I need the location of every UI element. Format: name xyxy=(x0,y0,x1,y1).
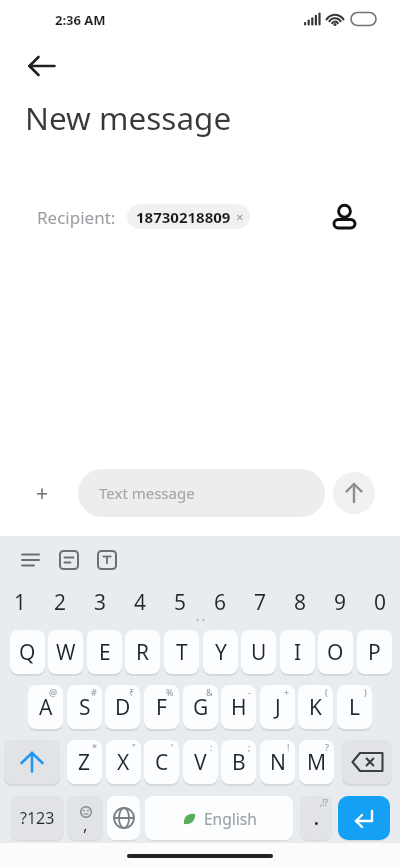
staticText: A xyxy=(39,693,53,722)
button[interactable]: X xyxy=(106,740,141,784)
button[interactable]: C xyxy=(144,740,179,784)
button[interactable]: Y xyxy=(203,630,238,674)
staticText: ( xyxy=(325,686,328,698)
button[interactable] xyxy=(4,740,60,784)
button[interactable]: J xyxy=(260,685,295,729)
staticText: U xyxy=(251,638,267,667)
staticText: O xyxy=(327,638,344,667)
staticText: ; xyxy=(248,741,251,753)
staticText: English xyxy=(204,808,257,829)
button[interactable] xyxy=(333,472,375,514)
button[interactable]: R xyxy=(125,630,160,674)
staticText: Recipient: xyxy=(37,206,116,229)
staticText: , xyxy=(83,813,88,836)
button[interactable]: ?123 xyxy=(10,796,64,840)
button[interactable]: F xyxy=(144,685,179,729)
staticText: I xyxy=(294,638,302,667)
staticText: * xyxy=(92,741,97,753)
staticText: ) xyxy=(364,686,367,698)
button[interactable]: D xyxy=(105,685,140,729)
staticText: J xyxy=(275,693,281,722)
staticText: Y xyxy=(215,638,227,667)
button[interactable]: P xyxy=(357,630,392,674)
staticText: 1 xyxy=(14,588,27,617)
staticText: D xyxy=(115,693,131,722)
button[interactable]: I xyxy=(280,630,315,674)
button[interactable]: Q xyxy=(10,630,45,674)
button[interactable]: H xyxy=(221,685,256,729)
staticText: B xyxy=(232,748,246,777)
staticText: F xyxy=(156,693,167,722)
staticText: M xyxy=(307,748,327,777)
staticText: @ xyxy=(49,686,58,698)
staticText: C xyxy=(155,748,169,777)
staticText: New message xyxy=(25,96,232,139)
staticText: Text message xyxy=(99,483,195,503)
button[interactable]: B xyxy=(221,740,256,784)
button[interactable]: 9 xyxy=(320,582,360,622)
button[interactable]: E xyxy=(87,630,122,674)
staticText: ? xyxy=(325,741,329,753)
staticText: 7 xyxy=(254,588,267,617)
button[interactable]: English xyxy=(145,796,293,840)
button[interactable] xyxy=(326,198,364,236)
staticText: 18730218809 xyxy=(136,207,231,227)
staticText: - xyxy=(248,686,251,698)
button[interactable] xyxy=(107,796,140,840)
button[interactable]: L xyxy=(337,685,372,729)
button[interactable]: K xyxy=(298,685,333,729)
button[interactable]: 6 xyxy=(200,582,240,622)
button[interactable] xyxy=(18,44,66,88)
button[interactable]: M xyxy=(299,740,334,784)
staticText: Q xyxy=(19,638,36,667)
staticText: G xyxy=(193,693,209,722)
button[interactable]: Z xyxy=(67,740,102,784)
button[interactable]: U xyxy=(241,630,276,674)
button[interactable]: , xyxy=(67,796,103,840)
staticText: S xyxy=(79,693,91,722)
button[interactable]: W xyxy=(48,630,83,674)
button[interactable]: 1 xyxy=(0,582,40,622)
button[interactable]: 5 xyxy=(160,582,200,622)
staticText: 6 xyxy=(214,588,227,617)
staticText: H xyxy=(231,693,247,722)
button[interactable]: N xyxy=(260,740,295,784)
button[interactable]: 2 xyxy=(40,582,80,622)
button[interactable]: T xyxy=(164,630,199,674)
button[interactable]: A xyxy=(28,685,63,729)
button[interactable]: 8 xyxy=(280,582,320,622)
staticText: " xyxy=(132,741,136,753)
button[interactable]: . xyxy=(300,796,332,840)
staticText: 9 xyxy=(334,588,347,617)
button[interactable]: G xyxy=(183,685,218,729)
button[interactable]: 18730218809 xyxy=(127,204,250,229)
staticText: : xyxy=(210,741,213,753)
button[interactable] xyxy=(338,796,390,840)
staticText: P xyxy=(368,638,381,667)
button[interactable]: O xyxy=(318,630,353,674)
staticText: R xyxy=(136,638,150,667)
button[interactable]: 4 xyxy=(120,582,160,622)
staticText: + xyxy=(36,479,49,508)
staticText: 5 xyxy=(174,588,187,617)
button[interactable]: 7 xyxy=(240,582,280,622)
staticText: ₹ xyxy=(129,686,135,698)
staticText: ! xyxy=(287,741,290,753)
button[interactable] xyxy=(342,740,392,784)
staticText: + xyxy=(284,686,290,698)
staticText: 2 xyxy=(54,588,67,617)
staticText: L xyxy=(349,693,361,722)
staticText: N xyxy=(270,748,286,777)
button[interactable]: S xyxy=(67,685,102,729)
button[interactable]: Text message xyxy=(78,469,325,517)
button[interactable]: 3 xyxy=(80,582,120,622)
staticText: # xyxy=(91,686,97,698)
staticText: E xyxy=(99,638,111,667)
button[interactable]: 0 xyxy=(360,582,400,622)
staticText: 2:36 AM xyxy=(55,11,106,29)
staticText: % xyxy=(166,686,174,698)
staticText: × xyxy=(236,208,244,226)
staticText: ?123 xyxy=(20,807,55,829)
button[interactable]: V xyxy=(183,740,218,784)
staticText: 4 xyxy=(134,588,147,617)
